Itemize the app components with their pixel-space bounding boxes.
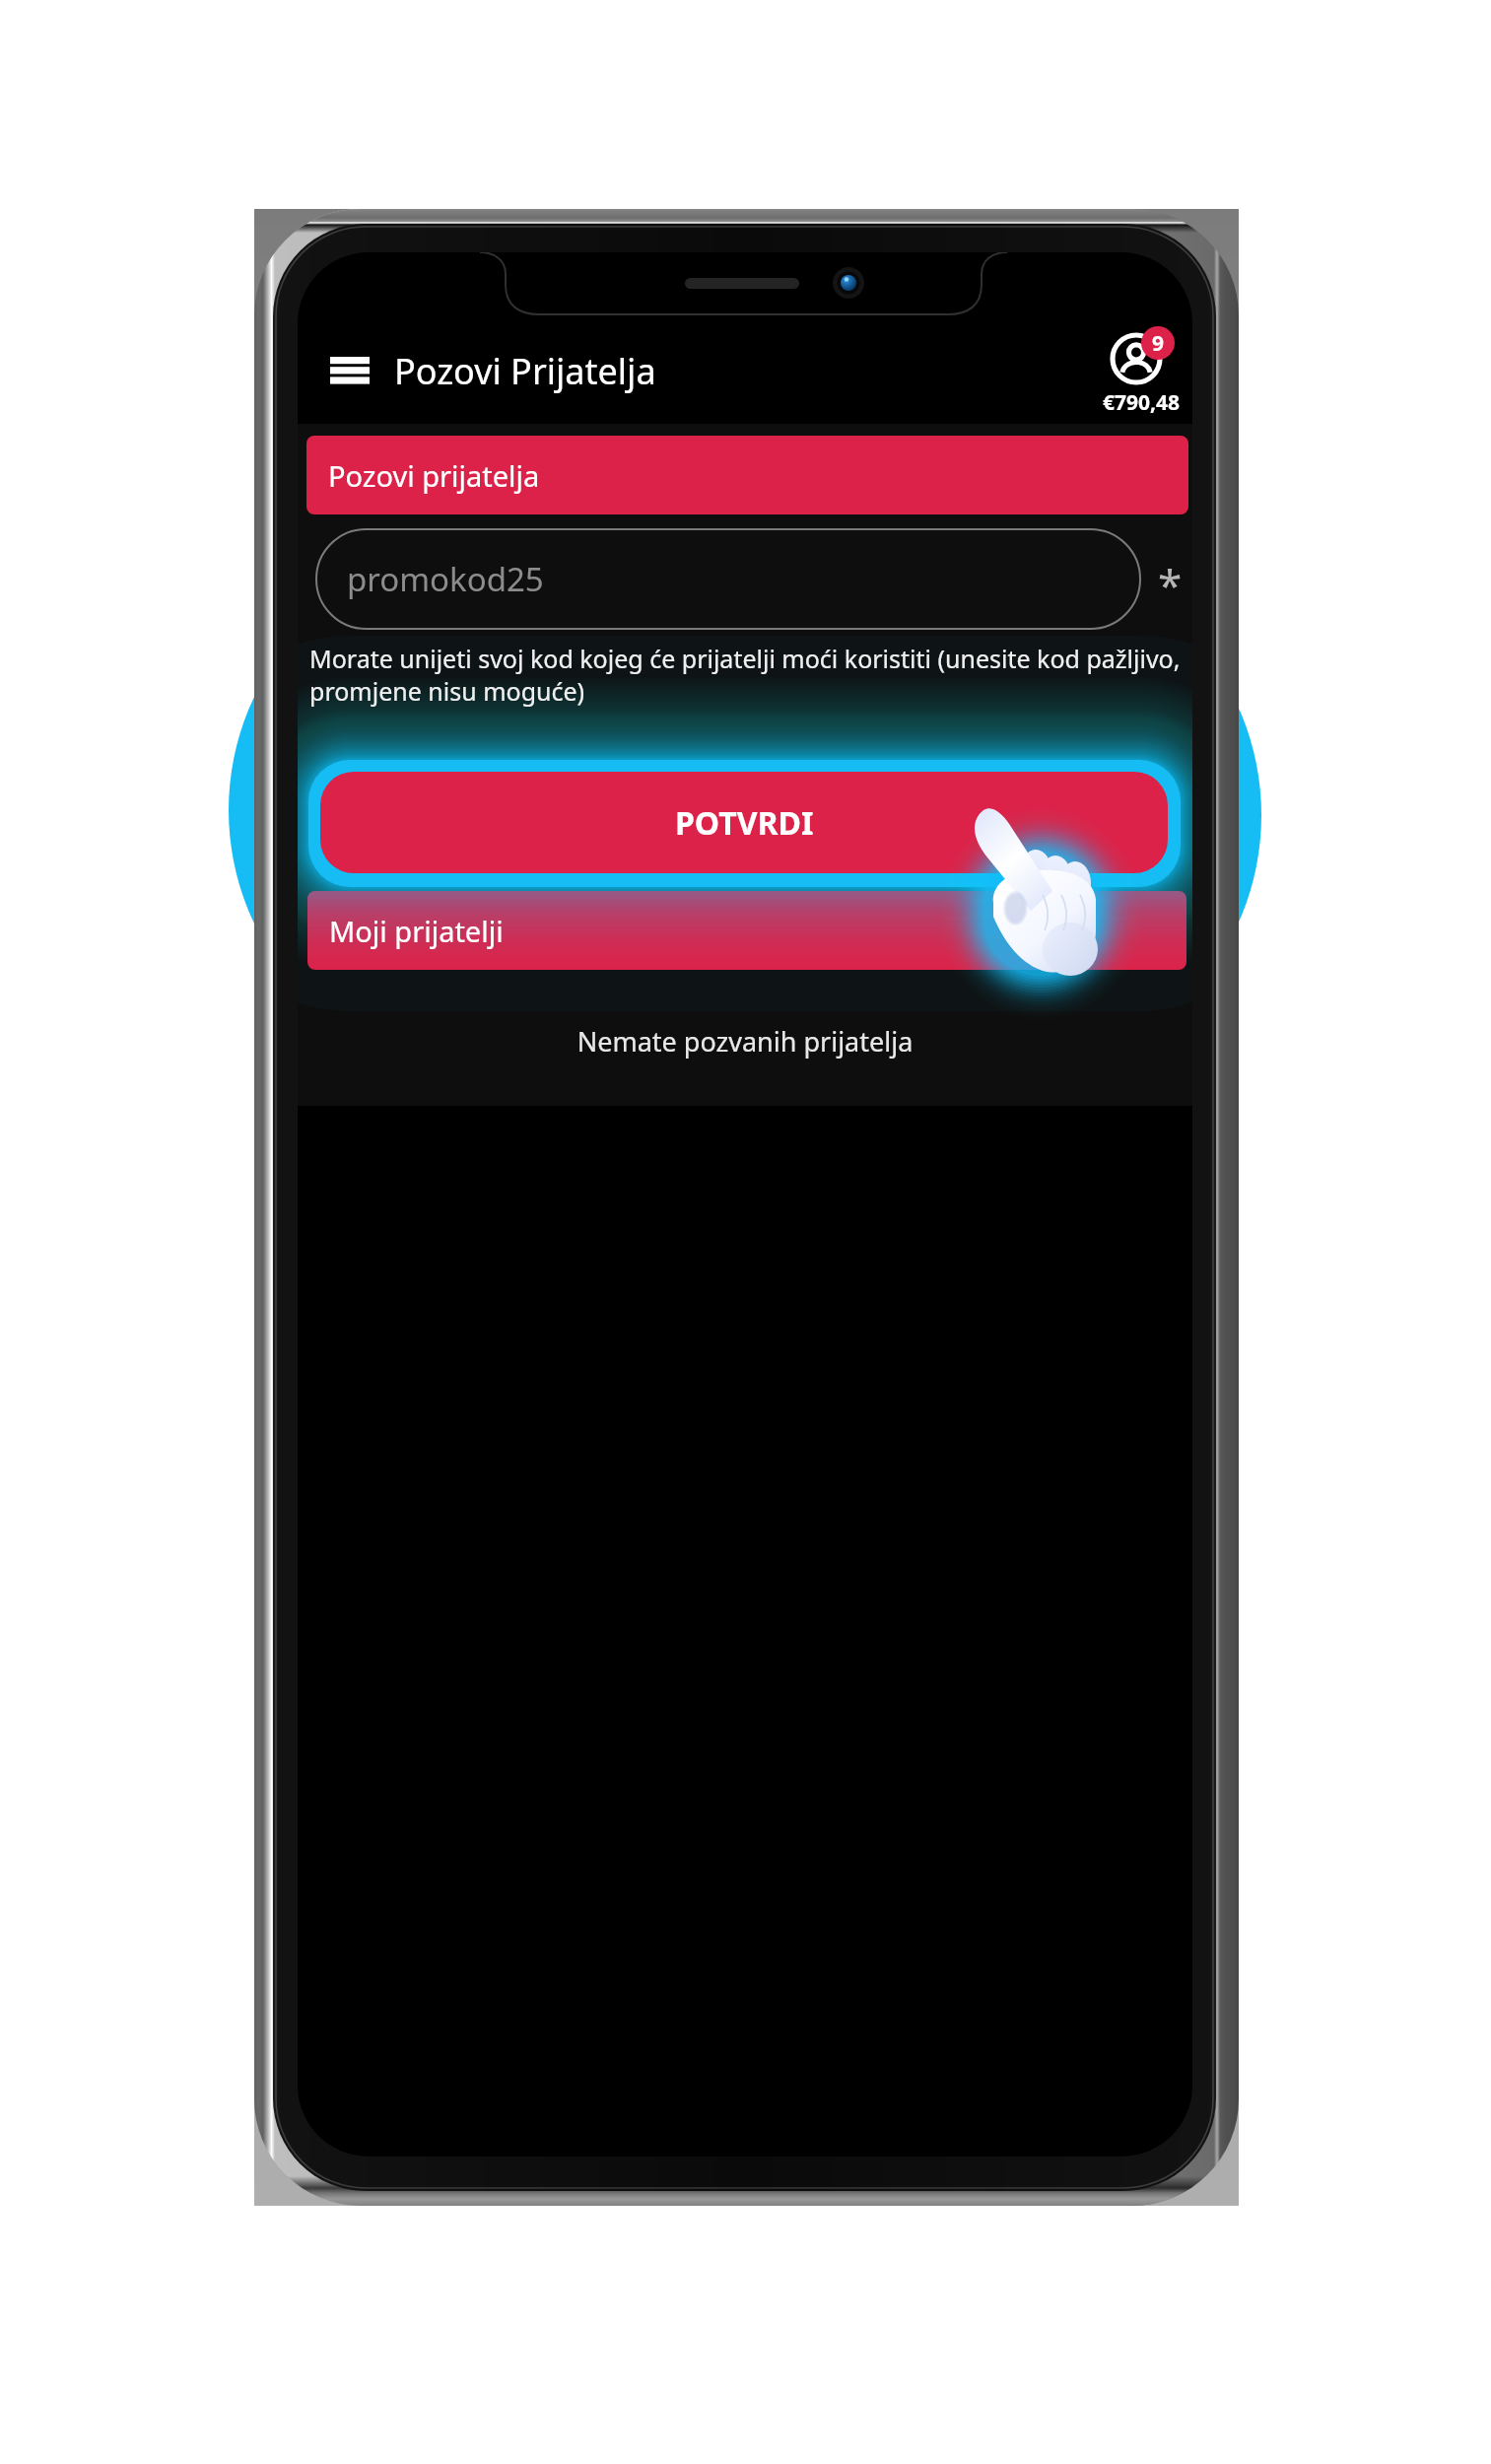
- button[interactable]: promokod25: [315, 528, 1141, 630]
- staticText: Pozovi prijatelja: [328, 456, 540, 495]
- button[interactable]: Open navigation menu: [316, 343, 383, 398]
- staticText: POTVRDI: [675, 801, 814, 845]
- staticText: Moji prijatelji: [329, 912, 504, 950]
- staticText: promokod25: [347, 557, 544, 601]
- staticText: *: [1158, 555, 1183, 614]
- staticText: Pozovi Prijatelja: [394, 347, 656, 395]
- button[interactable]: Pozovi prijatelja: [306, 436, 1188, 514]
- staticText: Nemate pozvanih prijatelja: [298, 1023, 1192, 1060]
- staticText: Morate unijeti svoj kod kojeg će prijate…: [309, 642, 1191, 708]
- button[interactable]: Account, balance 790,48 euro: [1094, 321, 1188, 418]
- staticText: €790,48: [1103, 388, 1181, 417]
- button[interactable]: POTVRDI: [320, 772, 1168, 873]
- button[interactable]: Moji prijatelji: [307, 891, 1186, 970]
- staticText: 9: [1152, 329, 1165, 358]
